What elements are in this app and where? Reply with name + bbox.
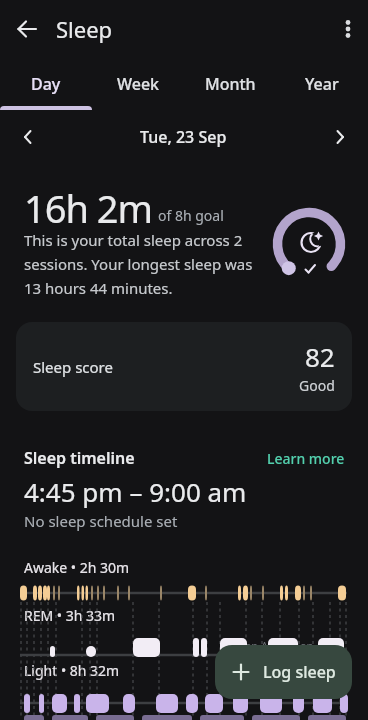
button[interactable]: Learn more [267, 449, 345, 468]
button[interactable]: Month [184, 58, 276, 110]
staticText: This is your total sleep across 2 sessio… [24, 230, 253, 298]
staticText: Day [31, 73, 61, 95]
staticText: Awake • 2h 30m [24, 558, 130, 577]
staticText: Month [205, 73, 256, 95]
staticText: Sleep score [33, 357, 113, 377]
staticText: Sleep timeline [24, 447, 135, 469]
staticText: No sleep schedule set [24, 511, 178, 531]
button[interactable] [328, 9, 368, 49]
button[interactable]: Log sleep [215, 645, 352, 699]
staticText: Week [117, 73, 160, 95]
staticText: Tue, 23 Sep [140, 126, 227, 148]
button[interactable]: Year [276, 58, 368, 110]
staticText: 16h 2m [24, 182, 153, 234]
staticText: 82 [305, 339, 335, 374]
staticText: 4:45 pm – 9:00 am [24, 474, 247, 509]
staticText: Good [299, 376, 335, 395]
staticText: Sleep Afternoon [230, 638, 314, 653]
staticText: Light • 8h 32m [24, 661, 120, 680]
button[interactable] [15, 17, 39, 41]
staticText: of 8h goal [158, 206, 224, 225]
button[interactable]: Sleep score [16, 322, 352, 411]
button[interactable] [312, 118, 368, 156]
staticText: Sleep [56, 14, 113, 44]
staticText: REM • 3h 33m [24, 606, 116, 625]
button[interactable]: Week [92, 58, 184, 110]
button[interactable]: Day [0, 58, 92, 110]
button[interactable] [0, 118, 56, 156]
staticText: Learn more [267, 449, 345, 468]
staticText: Year [305, 73, 339, 95]
staticText: Log sleep [263, 661, 336, 683]
